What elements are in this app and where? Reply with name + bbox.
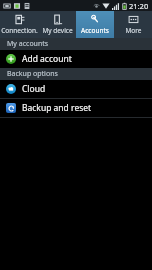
staticText: My device: [42, 26, 73, 35]
staticText: Connection.: [1, 26, 38, 35]
button[interactable]: Connection.: [0, 11, 38, 38]
staticText: Backup options: [7, 69, 58, 79]
staticText: 21:20: [129, 1, 149, 11]
staticText: More: [125, 26, 142, 35]
button[interactable]: Accounts: [76, 11, 114, 38]
button[interactable]: Cloud: [0, 80, 152, 98]
staticText: My accounts: [7, 39, 49, 49]
staticText: Add account: [22, 53, 72, 65]
staticText: Accounts: [81, 26, 109, 35]
button[interactable]: Backup and reset: [0, 99, 152, 117]
button[interactable]: My device: [38, 11, 76, 38]
staticText: Backup and reset: [22, 102, 92, 114]
button[interactable]: Add account: [0, 50, 152, 68]
button[interactable]: More: [114, 11, 152, 38]
staticText: Cloud: [22, 83, 46, 95]
